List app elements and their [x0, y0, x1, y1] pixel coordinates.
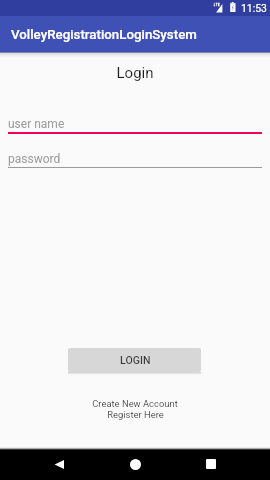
staticText: LOGIN — [120, 354, 151, 366]
staticText: Register Here — [107, 409, 164, 420]
staticText: user name — [8, 117, 65, 131]
button[interactable]: LOGIN — [68, 348, 201, 372]
staticText: password — [8, 152, 61, 166]
button[interactable]: user name — [0, 114, 270, 134]
staticText: Login — [0, 64, 270, 82]
button[interactable]: Back — [37, 449, 81, 479]
button[interactable]: Create New Account — [0, 398, 270, 420]
button[interactable]: Home — [113, 449, 157, 479]
staticText: VolleyRegistrationLoginSystem — [11, 27, 197, 43]
button[interactable]: Recents — [189, 449, 233, 479]
staticText: 11:53 — [241, 2, 267, 14]
staticText: Create New Account — [92, 398, 178, 409]
button[interactable]: password — [0, 149, 270, 169]
